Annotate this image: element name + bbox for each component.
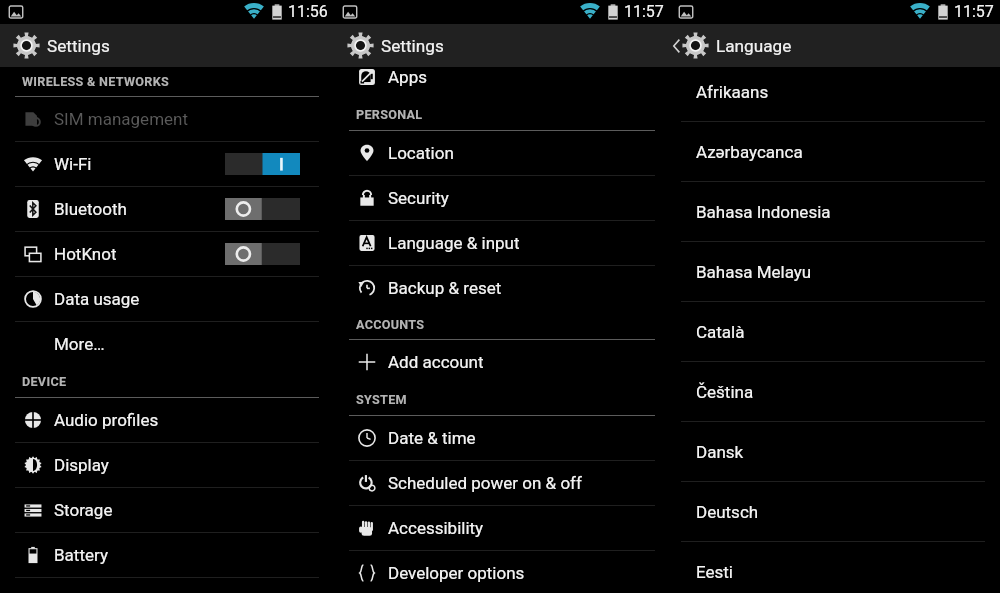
button[interactable]: Bluetooth (0, 187, 334, 231)
staticText: Developer options (388, 563, 525, 583)
button[interactable]: Location (334, 131, 670, 175)
staticText: Bluetooth (54, 199, 127, 219)
button[interactable]: Bahasa Indonesia (670, 182, 1000, 241)
staticText: Add account (388, 352, 484, 372)
staticText: Backup & reset (388, 278, 502, 298)
staticText: Afrikaans (696, 82, 769, 102)
staticText: Security (388, 188, 449, 208)
button[interactable]: Language & input (334, 221, 670, 265)
button[interactable]: Date & time (334, 416, 670, 460)
staticText: SYSTEM (356, 392, 407, 407)
button[interactable]: Wi-Fi (0, 142, 334, 186)
button[interactable]: Afrikaans (670, 67, 1000, 121)
staticText: HotKnot (54, 244, 117, 264)
button[interactable] (225, 198, 300, 220)
button[interactable] (225, 153, 300, 175)
button[interactable]: Settings (334, 24, 670, 67)
button[interactable]: Deutsch (670, 482, 1000, 541)
staticText: Eesti (696, 562, 733, 582)
staticText: ACCOUNTS (356, 317, 425, 332)
button[interactable]: Backup & reset (334, 266, 670, 310)
staticText: Date & time (388, 428, 476, 448)
staticText: More… (54, 334, 105, 354)
button[interactable]: Add account (334, 340, 670, 384)
button[interactable]: Apps (334, 67, 670, 99)
button[interactable]: Data usage (0, 277, 334, 321)
staticText: Deutsch (696, 502, 759, 522)
staticText: Language (716, 36, 792, 56)
staticText: 11:56 (288, 2, 328, 21)
staticText: Wi-Fi (54, 154, 92, 174)
staticText: WIRELESS & NETWORKS (22, 74, 170, 89)
button[interactable]: Čeština (670, 362, 1000, 421)
staticText: Location (388, 143, 454, 163)
staticText: PERSONAL (356, 107, 423, 122)
staticText: Dansk (696, 442, 744, 462)
staticText: Data usage (54, 289, 140, 309)
staticText: Accessibility (388, 518, 484, 538)
button[interactable]: Security (334, 176, 670, 220)
button[interactable]: Storage (0, 488, 334, 532)
button[interactable]: Battery (0, 533, 334, 577)
button[interactable]: Azərbaycanca (670, 122, 1000, 181)
button[interactable]: Display (0, 443, 334, 487)
staticText: 11:57 (954, 2, 994, 21)
button[interactable]: Català (670, 302, 1000, 361)
button[interactable] (225, 243, 300, 265)
staticText: SIM management (54, 109, 188, 129)
staticText: 11:57 (624, 2, 664, 21)
staticText: Català (696, 322, 745, 342)
staticText: Apps (388, 67, 427, 87)
button[interactable]: Language (670, 24, 1000, 67)
button[interactable]: Dansk (670, 422, 1000, 481)
button[interactable]: Accessibility (334, 506, 670, 550)
button[interactable]: Developer options (334, 551, 670, 593)
staticText: Language & input (388, 233, 520, 253)
staticText: Scheduled power on & off (388, 473, 582, 493)
button[interactable]: HotKnot (0, 232, 334, 276)
button[interactable]: Eesti (670, 542, 1000, 593)
button[interactable]: More… (0, 322, 334, 366)
staticText: DEVICE (22, 374, 67, 389)
staticText: Settings (47, 36, 110, 56)
button[interactable]: SIM management (0, 97, 334, 141)
staticText: Battery (54, 545, 108, 565)
staticText: Settings (381, 36, 444, 56)
staticText: Bahasa Indonesia (696, 202, 831, 222)
staticText: Bahasa Melayu (696, 262, 812, 282)
button[interactable]: Settings (0, 24, 334, 67)
button[interactable]: Bahasa Melayu (670, 242, 1000, 301)
staticText: Storage (54, 500, 113, 520)
button[interactable]: Scheduled power on & off (334, 461, 670, 505)
button[interactable]: Audio profiles (0, 398, 334, 442)
staticText: Audio profiles (54, 410, 159, 430)
staticText: Display (54, 455, 109, 475)
staticText: Čeština (696, 382, 754, 402)
staticText: Azərbaycanca (696, 142, 803, 162)
